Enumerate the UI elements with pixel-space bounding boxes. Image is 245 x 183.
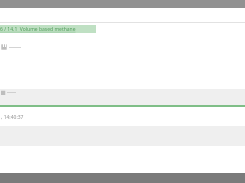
button[interactable]: Attachment [0,42,245,52]
staticText: , 14:40:37 [1,114,24,121]
staticText: 6 / 14.1 Volume based methane emissions [0,26,96,33]
button[interactable]: 6 / 14.1 Volume based methane emissions [0,25,96,33]
